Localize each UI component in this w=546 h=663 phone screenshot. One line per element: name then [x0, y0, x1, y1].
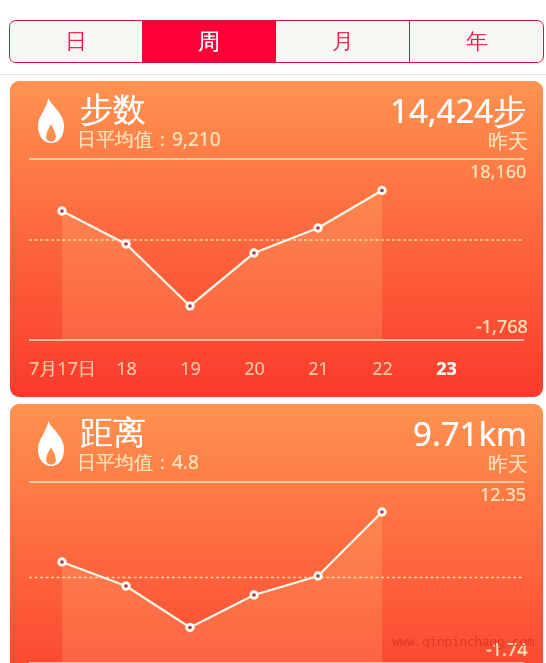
button[interactable]: 日: [10, 21, 142, 62]
staticText: www.qinpinchang.com: [392, 633, 535, 650]
staticText: 日平均值：9,210: [77, 126, 221, 152]
staticText: 日: [65, 28, 87, 56]
staticText: 18: [116, 356, 137, 381]
staticText: -1.74: [486, 637, 528, 662]
staticText: 9.71km: [413, 411, 527, 456]
staticText: 步数: [80, 89, 146, 131]
staticText: 12.35: [480, 482, 527, 507]
staticText: 距离: [80, 412, 146, 454]
staticText: 7月17日: [29, 356, 96, 381]
button[interactable]: 距离: [10, 404, 543, 663]
staticText: 20: [244, 356, 265, 381]
staticText: 19: [180, 356, 201, 381]
staticText: 日平均值：4.8: [77, 449, 199, 475]
staticText: 昨天: [488, 129, 528, 154]
staticText: 18,160: [470, 159, 527, 184]
button[interactable]: 步数: [10, 81, 543, 397]
staticText: 14,424步: [390, 88, 527, 133]
staticText: 周: [198, 28, 220, 56]
staticText: -1,768: [476, 314, 528, 339]
staticText: 21: [308, 356, 329, 381]
staticText: 年: [466, 28, 488, 56]
button[interactable]: 周: [143, 21, 275, 62]
staticText: 昨天: [488, 452, 528, 477]
staticText: 22: [372, 356, 393, 381]
button[interactable]: 年: [410, 21, 543, 62]
staticText: 月: [332, 28, 354, 56]
button[interactable]: 月: [276, 21, 409, 62]
staticText: 23: [436, 356, 457, 381]
